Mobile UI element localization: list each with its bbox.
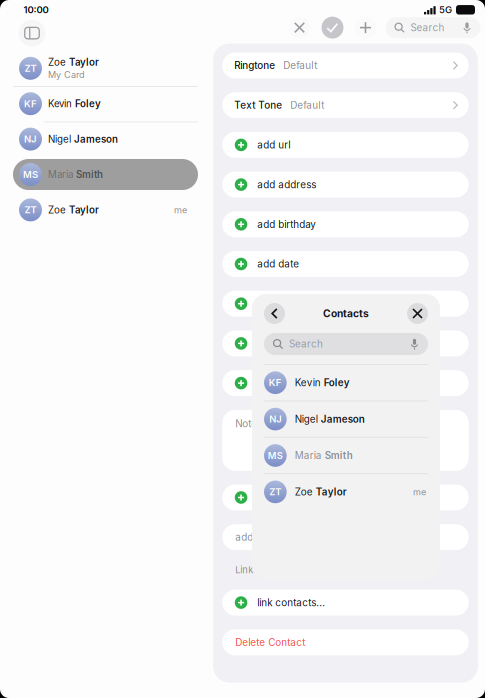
button[interactable]: Back [264,303,285,324]
staticText: 5G [439,4,452,16]
button[interactable]: Add [354,17,376,39]
button[interactable]: add url [222,132,469,158]
staticText: NJ [269,413,281,425]
staticText: Default [290,99,324,111]
button[interactable]: Text Tone [222,92,469,118]
button[interactable]: NJ [13,124,198,155]
staticText: 10:00 [23,4,48,16]
staticText: Zoe [48,56,66,68]
staticText: Smith [325,449,353,461]
button[interactable]: Search [385,17,480,38]
staticText: Foley [324,377,350,389]
button[interactable]: Search [264,333,428,355]
staticText: Foley [75,98,101,110]
button[interactable]: Toggle Sidebar [17,19,46,48]
button[interactable]: MS [252,438,440,473]
staticText: Zoe [295,486,313,498]
staticText: Nigel [48,133,71,145]
button[interactable]: ZT [252,474,440,510]
staticText: Jameson [321,413,365,425]
staticText: Search [410,22,444,33]
button[interactable]: ZT [13,53,198,84]
staticText: add instant message [257,377,355,389]
staticText: Taylor [316,486,347,498]
button[interactable]: add related name [222,291,469,317]
staticText: link contacts... [257,597,325,608]
staticText: add url [257,139,290,151]
button[interactable]: link contacts... [222,590,469,616]
button[interactable]: ZT [13,194,198,225]
staticText: me [174,204,187,215]
button[interactable]: Ringtone [222,52,469,78]
button[interactable]: KF [252,365,440,400]
button[interactable]: add birthday [222,211,469,237]
staticText: Contacts [323,307,369,320]
staticText: Taylor [69,204,99,216]
button[interactable]: Close [407,303,428,324]
staticText: Default [283,59,317,71]
staticText: Nigel [295,413,318,425]
button[interactable]: add address [222,172,469,198]
staticText: MS [268,450,283,461]
staticText: MS [23,169,38,180]
staticText: ZT [269,486,281,498]
button[interactable]: Done [321,17,343,39]
button[interactable]: add to emergency contacts [222,524,469,550]
staticText: add to emergency contacts [235,531,366,543]
staticText [318,413,321,425]
staticText: add field [257,491,298,503]
staticText: add address [257,179,316,190]
button[interactable]: Delete Contact [222,629,469,655]
staticText: ZT [24,63,36,74]
staticText: add birthday [257,218,316,230]
staticText: me [413,486,426,497]
staticText: ZT [24,204,36,216]
staticText: Zoe [48,204,66,216]
staticText: Maria [295,449,322,461]
button[interactable]: MS [13,159,198,190]
staticText: Ringtone [234,59,275,71]
staticText: Delete Contact [235,636,305,648]
staticText: Search [289,338,323,350]
staticText: Maria [48,169,73,180]
staticText: add related name [257,298,341,310]
staticText: Notes [235,418,262,430]
staticText [313,486,316,498]
button[interactable]: add field [222,484,469,510]
staticText: My Card [48,69,85,80]
staticText: Text Tone [234,99,282,111]
staticText: Smith [76,169,103,180]
button[interactable]: Cancel [288,17,310,39]
staticText: add social profile [257,337,338,349]
staticText: KF [269,377,282,388]
staticText: KF [24,98,37,109]
button[interactable]: KF [13,88,198,119]
button[interactable]: add date [222,251,469,277]
staticText: Kevin [48,98,72,110]
staticText: NJ [24,133,37,145]
button[interactable]: NJ [252,401,440,437]
staticText: Taylor [69,56,99,68]
button[interactable]: add instant message [222,370,469,396]
staticText: add date [257,258,299,270]
staticText: Jameson [74,133,118,145]
staticText: Kevin [295,377,321,389]
button[interactable]: add social profile [222,330,469,356]
staticText: Linked Contacts [235,564,307,576]
